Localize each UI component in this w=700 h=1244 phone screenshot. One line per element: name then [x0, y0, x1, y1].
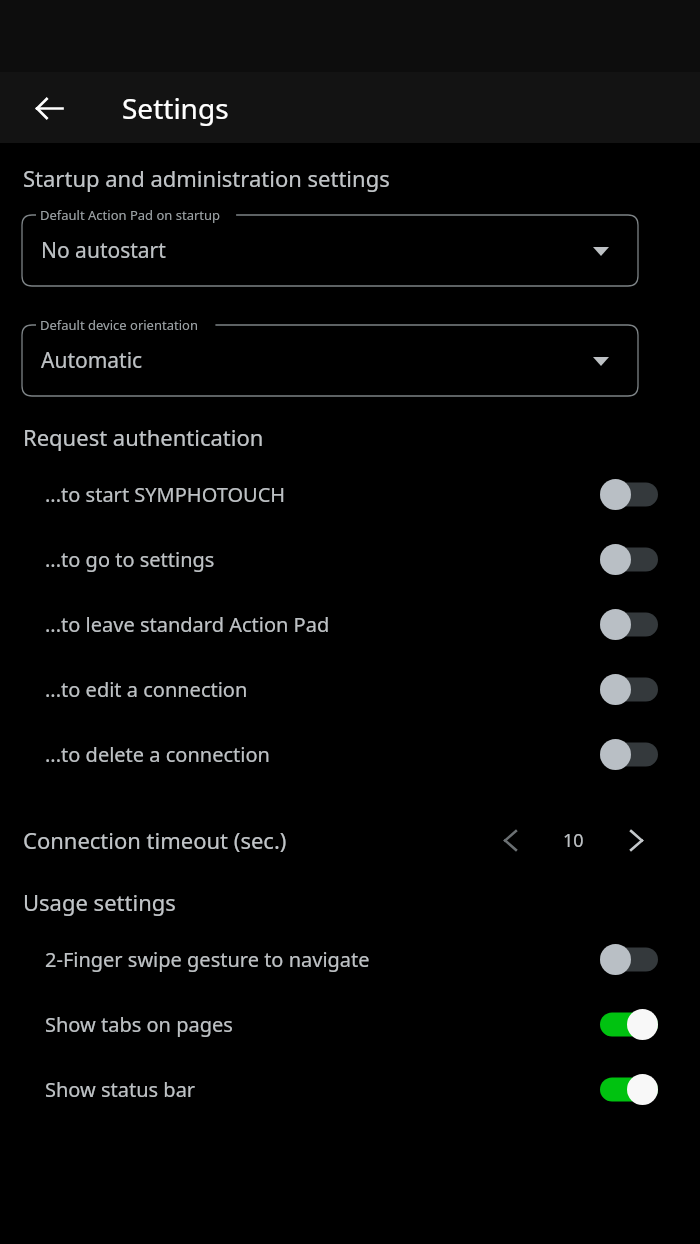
button[interactable]: ...to edit a connection — [0, 657, 700, 722]
staticText: 10 — [563, 828, 584, 853]
button[interactable]: Expand Default Action Pad on startup — [584, 234, 618, 268]
button[interactable]: ...to go to settings — [0, 527, 700, 592]
staticText: No autostart — [41, 236, 166, 265]
staticText: Show tabs on pages — [45, 1011, 233, 1038]
staticText: Default Action Pad on startup — [40, 206, 221, 224]
button[interactable]: ...to leave standard Action Pad — [0, 592, 700, 657]
button[interactable]: ...to delete a connection — [0, 722, 700, 787]
button[interactable]: Increase timeout — [612, 816, 660, 864]
staticText: Startup and administration settings — [23, 163, 390, 193]
staticText: Usage settings — [23, 887, 176, 917]
button[interactable]: Show status bar — [0, 1057, 700, 1122]
button[interactable]: Default Action Pad on startup — [22, 206, 638, 286]
staticText: Default device orientation — [40, 316, 198, 334]
staticText: ...to edit a connection — [45, 676, 248, 703]
staticText: Settings — [122, 89, 229, 127]
staticText: Connection timeout (sec.) — [23, 825, 287, 855]
button[interactable]: Back — [17, 76, 81, 140]
staticText: ...to start SYMPHOTOUCH — [45, 481, 286, 508]
staticText: ...to leave standard Action Pad — [45, 611, 330, 638]
staticText: Automatic — [41, 346, 143, 375]
button[interactable]: Decrease timeout — [486, 816, 534, 864]
button[interactable]: 2-Finger swipe gesture to navigate — [0, 927, 700, 992]
button[interactable]: ...to start SYMPHOTOUCH — [0, 462, 700, 527]
staticText: Request authentication — [23, 422, 264, 452]
staticText: ...to delete a connection — [45, 741, 270, 768]
staticText: 2-Finger swipe gesture to navigate — [45, 946, 370, 973]
staticText: Show status bar — [45, 1076, 196, 1103]
button[interactable]: Show tabs on pages — [0, 992, 700, 1057]
button[interactable]: Expand Default device orientation — [584, 344, 618, 378]
button[interactable]: Default device orientation — [22, 316, 638, 396]
staticText: ...to go to settings — [45, 546, 215, 573]
